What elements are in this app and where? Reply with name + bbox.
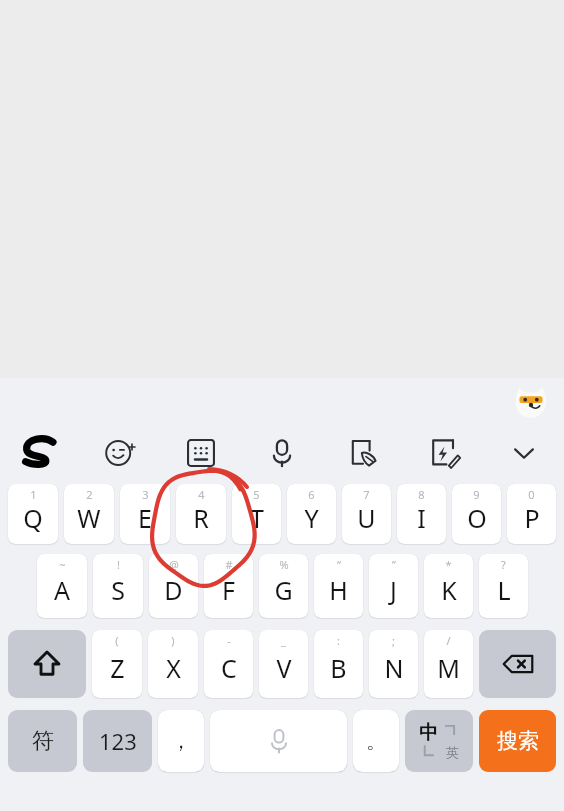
button[interactable]: 。	[353, 710, 399, 772]
button[interactable]: 2	[64, 484, 114, 544]
button[interactable]: _	[259, 630, 308, 698]
staticText: F	[222, 573, 235, 607]
staticText: (	[115, 633, 119, 648]
button[interactable]: 8	[397, 484, 446, 544]
staticText: @	[169, 557, 179, 572]
staticText: Z	[110, 651, 125, 685]
button[interactable]: Space	[210, 710, 347, 772]
button[interactable]: %	[259, 554, 308, 618]
button[interactable]: 1	[8, 484, 58, 544]
button[interactable]: ~	[37, 554, 87, 618]
button[interactable]: 5	[232, 484, 281, 544]
button[interactable]: ?	[479, 554, 528, 618]
staticText: ~	[59, 557, 66, 572]
button[interactable]: ，	[158, 710, 204, 772]
button[interactable]: *	[424, 554, 473, 618]
button[interactable]: Shift	[8, 630, 86, 698]
button[interactable]: #	[204, 554, 253, 618]
staticText: D	[164, 573, 183, 607]
staticText: 1	[30, 487, 37, 502]
staticText: 4	[198, 487, 205, 502]
staticText: O	[467, 501, 487, 535]
button[interactable]: ”	[369, 554, 418, 618]
button[interactable]: 4	[176, 484, 226, 544]
button[interactable]: -	[204, 630, 253, 698]
button[interactable]: Hide keyboard	[484, 430, 564, 476]
staticText: !	[117, 557, 120, 572]
button[interactable]: 123	[83, 710, 152, 772]
button[interactable]: Quick input	[404, 430, 484, 476]
button[interactable]: )	[148, 630, 198, 698]
staticText: 3	[142, 487, 149, 502]
staticText: I	[417, 501, 426, 535]
button[interactable]: Sogou	[0, 430, 80, 476]
staticText: ”	[392, 557, 396, 572]
button[interactable]: “	[314, 554, 363, 618]
staticText: J	[390, 573, 397, 607]
button[interactable]: (	[92, 630, 142, 698]
staticText: S	[111, 573, 125, 607]
staticText: 搜索	[497, 728, 539, 754]
button[interactable]: :	[314, 630, 363, 698]
button[interactable]: Emoji	[80, 430, 160, 476]
staticText: 9	[473, 487, 480, 502]
button[interactable]: 6	[287, 484, 336, 544]
staticText: X	[166, 651, 181, 685]
staticText: L	[497, 573, 511, 607]
staticText: 8	[418, 487, 425, 502]
staticText: )	[171, 633, 175, 648]
staticText: A	[54, 573, 70, 607]
staticText: M	[437, 651, 460, 685]
staticText: 英	[446, 744, 459, 760]
staticText: #	[225, 557, 233, 572]
staticText: C	[221, 651, 237, 685]
staticText: -	[227, 633, 231, 648]
staticText: “	[337, 557, 341, 572]
button[interactable]: 7	[342, 484, 391, 544]
button[interactable]: 0	[507, 484, 556, 544]
staticText: 。	[366, 729, 386, 754]
staticText: _	[281, 633, 286, 648]
staticText: /	[446, 633, 451, 648]
button[interactable]: @	[149, 554, 198, 618]
staticText: G	[274, 573, 293, 607]
button[interactable]: Chinese English toggle	[405, 710, 473, 772]
staticText: 6	[308, 487, 315, 502]
staticText: %	[279, 557, 289, 572]
staticText: K	[441, 573, 457, 607]
staticText: 7	[363, 487, 370, 502]
button[interactable]: 符	[8, 710, 77, 772]
button[interactable]: /	[424, 630, 473, 698]
staticText: E	[138, 501, 152, 535]
button[interactable]: ;	[369, 630, 418, 698]
staticText: B	[330, 651, 347, 685]
staticText: ?	[501, 557, 506, 572]
staticText: ，	[171, 729, 191, 754]
staticText: 2	[86, 487, 93, 502]
button[interactable]: 搜索	[479, 710, 556, 772]
staticText: V	[276, 651, 292, 685]
staticText: :	[337, 633, 340, 648]
button[interactable]: Assistant	[514, 384, 548, 418]
button[interactable]: Keyboard layout	[160, 430, 242, 476]
staticText: Y	[304, 501, 319, 535]
button[interactable]: Handwriting	[322, 430, 404, 476]
staticText: 123	[99, 726, 137, 756]
button[interactable]: Backspace	[479, 630, 556, 698]
staticText: Q	[23, 501, 43, 535]
staticText: H	[329, 573, 348, 607]
staticText: 中	[419, 721, 438, 745]
staticText: 符	[32, 727, 54, 755]
button[interactable]: 9	[452, 484, 501, 544]
staticText: T	[250, 501, 264, 535]
button[interactable]: Voice input	[242, 430, 322, 476]
staticText: R	[193, 501, 209, 535]
staticText: 5	[253, 487, 260, 502]
staticText: N	[384, 651, 404, 685]
staticText: W	[77, 501, 101, 535]
staticText: P	[524, 501, 540, 535]
button[interactable]: !	[93, 554, 143, 618]
staticText: U	[357, 501, 376, 535]
button[interactable]: 3	[120, 484, 170, 544]
staticText: 0	[528, 487, 535, 502]
